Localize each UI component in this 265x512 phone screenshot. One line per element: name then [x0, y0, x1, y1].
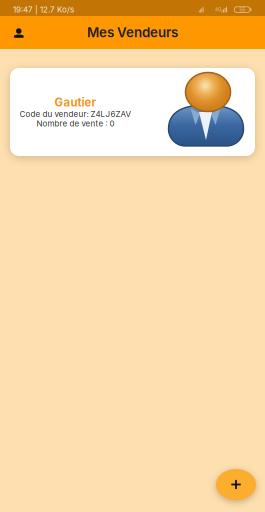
- button[interactable]: Account: [0, 16, 38, 49]
- staticText: Gautier: [54, 95, 96, 109]
- staticText: 19:47 | 12.7 Ko/s: [13, 5, 74, 14]
- staticText: Code du vendeur: Z4LJ6ZAV: [19, 109, 131, 119]
- staticText: Mes Vendeurs: [87, 24, 178, 40]
- staticText: 4G: [215, 7, 221, 12]
- staticText: Nombre de vente : 0: [36, 119, 114, 129]
- button[interactable]: Gautier: [10, 68, 255, 156]
- staticText: 55: [239, 6, 245, 13]
- button[interactable]: Add vendor: [216, 469, 256, 500]
